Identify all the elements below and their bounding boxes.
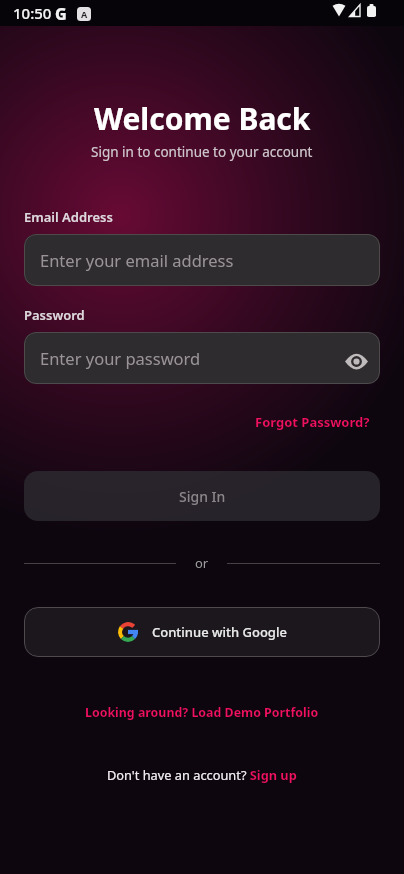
staticText: Enter your password xyxy=(40,347,201,369)
staticText: G xyxy=(55,3,67,25)
button[interactable]: Forgot Password? xyxy=(255,413,370,431)
staticText: Sign in to continue to your account xyxy=(91,143,313,161)
staticText: 10:50 xyxy=(13,3,52,23)
staticText: Don't have an account? Sign up xyxy=(107,766,297,783)
staticText: Welcome Back xyxy=(94,98,311,139)
staticText: Sign In xyxy=(179,487,226,506)
staticText: Email Address xyxy=(24,208,113,226)
button[interactable]: Don't have an account? Sign up xyxy=(0,766,404,783)
staticText: or xyxy=(195,554,209,572)
button[interactable]: Continue with Google xyxy=(24,607,380,657)
staticText: Password xyxy=(24,306,85,324)
button[interactable]: Looking around? Load Demo Portfolio xyxy=(85,704,319,721)
button[interactable]: Sign In xyxy=(24,471,380,521)
button[interactable]: Enter your email address xyxy=(24,234,380,286)
staticText: Continue with Google xyxy=(152,623,287,641)
staticText: Enter your email address xyxy=(40,249,234,271)
button[interactable]: Enter your password xyxy=(24,332,380,384)
staticText: A xyxy=(81,8,88,20)
